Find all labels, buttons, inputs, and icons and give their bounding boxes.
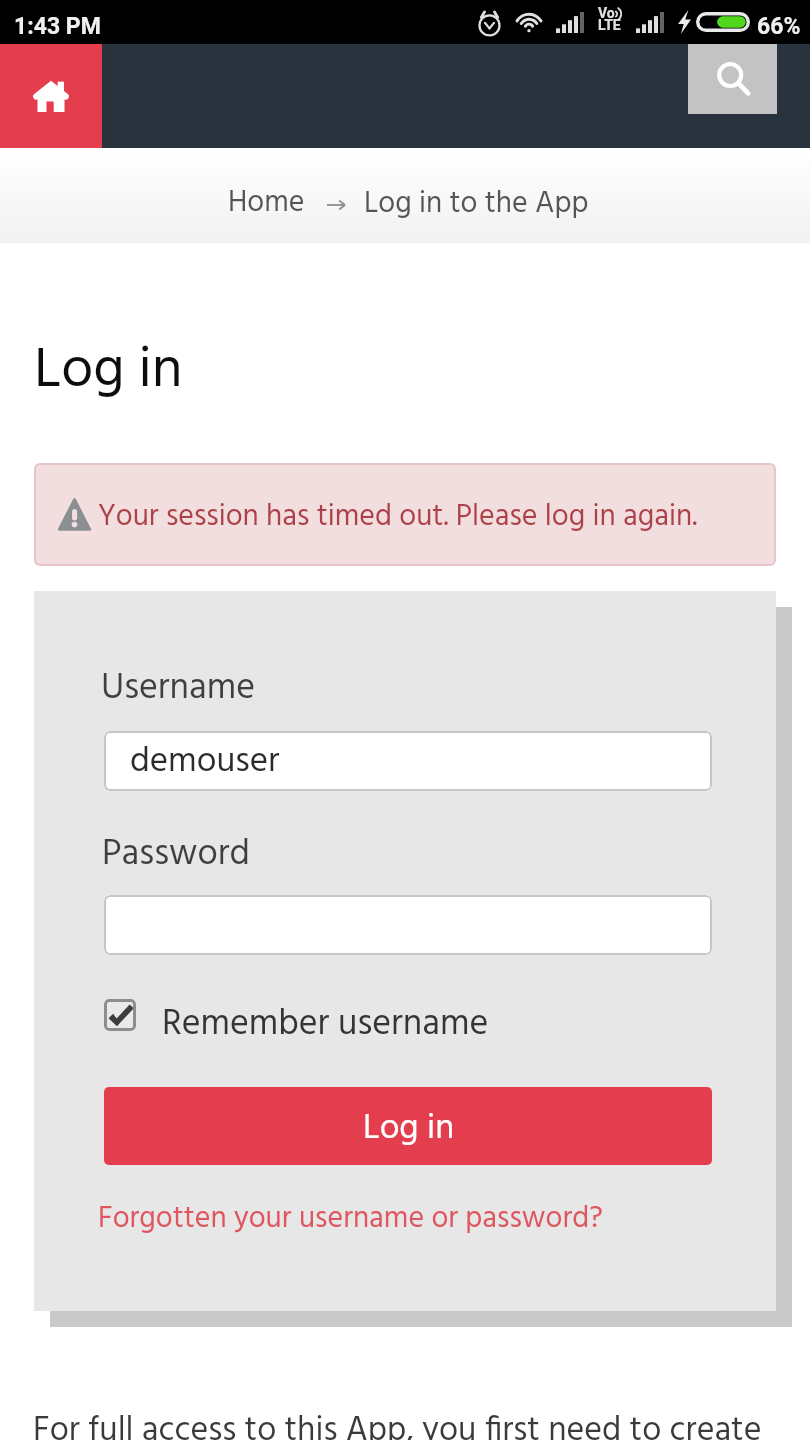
staticText: Your session has timed out. Please log i… <box>98 493 698 541</box>
staticText: demouser <box>130 734 280 790</box>
staticText: Log in <box>34 326 183 417</box>
staticText: Log in to the App <box>364 180 589 228</box>
staticText: Username <box>101 660 255 718</box>
button[interactable]: Log in <box>104 1087 712 1165</box>
button[interactable]: Remember username <box>104 996 489 1034</box>
button[interactable] <box>104 895 712 955</box>
staticText: Password <box>102 826 250 884</box>
button[interactable]: Forgotten your username or password? <box>98 1195 603 1243</box>
button[interactable]: Home <box>0 44 102 148</box>
staticText: For full access to this App, you first n… <box>33 1404 762 1440</box>
button[interactable]: Home <box>228 179 305 227</box>
button[interactable]: demouser <box>104 731 712 791</box>
staticText: 1:43 PM <box>14 13 101 40</box>
staticText: LTE <box>598 17 621 33</box>
staticText: Log in <box>363 1101 455 1157</box>
staticText: Forgotten your username or password? <box>98 1195 603 1243</box>
staticText: 66% <box>757 13 801 40</box>
staticText: Remember username <box>162 996 489 1034</box>
staticText: Home <box>228 179 305 227</box>
staticText: Vo <box>598 5 615 21</box>
button[interactable]: Search <box>688 44 777 114</box>
